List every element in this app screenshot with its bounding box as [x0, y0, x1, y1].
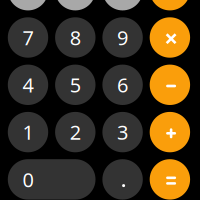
staticText: 4: [22, 71, 33, 98]
button[interactable]: 0: [8, 159, 95, 200]
staticText: 5: [70, 71, 81, 98]
staticText: 9: [117, 24, 128, 51]
button[interactable]: 4: [8, 65, 48, 105]
button[interactable]: Equals: [150, 159, 190, 200]
staticText: 2: [70, 119, 81, 145]
button[interactable]: Decimal point: [102, 159, 143, 200]
button[interactable]: 6: [102, 65, 143, 105]
button[interactable]: 7: [8, 17, 48, 58]
staticText: 8: [70, 24, 81, 51]
staticText: 6: [117, 71, 128, 98]
staticText: 7: [22, 24, 33, 51]
button[interactable]: AC: [8, 0, 48, 10]
button[interactable]: ±: [55, 0, 95, 10]
button[interactable]: 2: [55, 112, 95, 152]
button[interactable]: 5: [55, 65, 95, 105]
button[interactable]: Multiply: [150, 17, 190, 58]
button[interactable]: 1: [8, 112, 48, 152]
button[interactable]: %: [102, 0, 143, 10]
staticText: 0: [22, 166, 33, 193]
button[interactable]: Subtract: [150, 65, 190, 105]
button[interactable]: Add: [150, 112, 190, 152]
button[interactable]: 8: [55, 17, 95, 58]
button[interactable]: 3: [102, 112, 143, 152]
button[interactable]: 9: [102, 17, 143, 58]
staticText: 3: [117, 119, 128, 145]
staticText: 1: [22, 119, 33, 145]
button[interactable]: Divide: [150, 0, 190, 10]
